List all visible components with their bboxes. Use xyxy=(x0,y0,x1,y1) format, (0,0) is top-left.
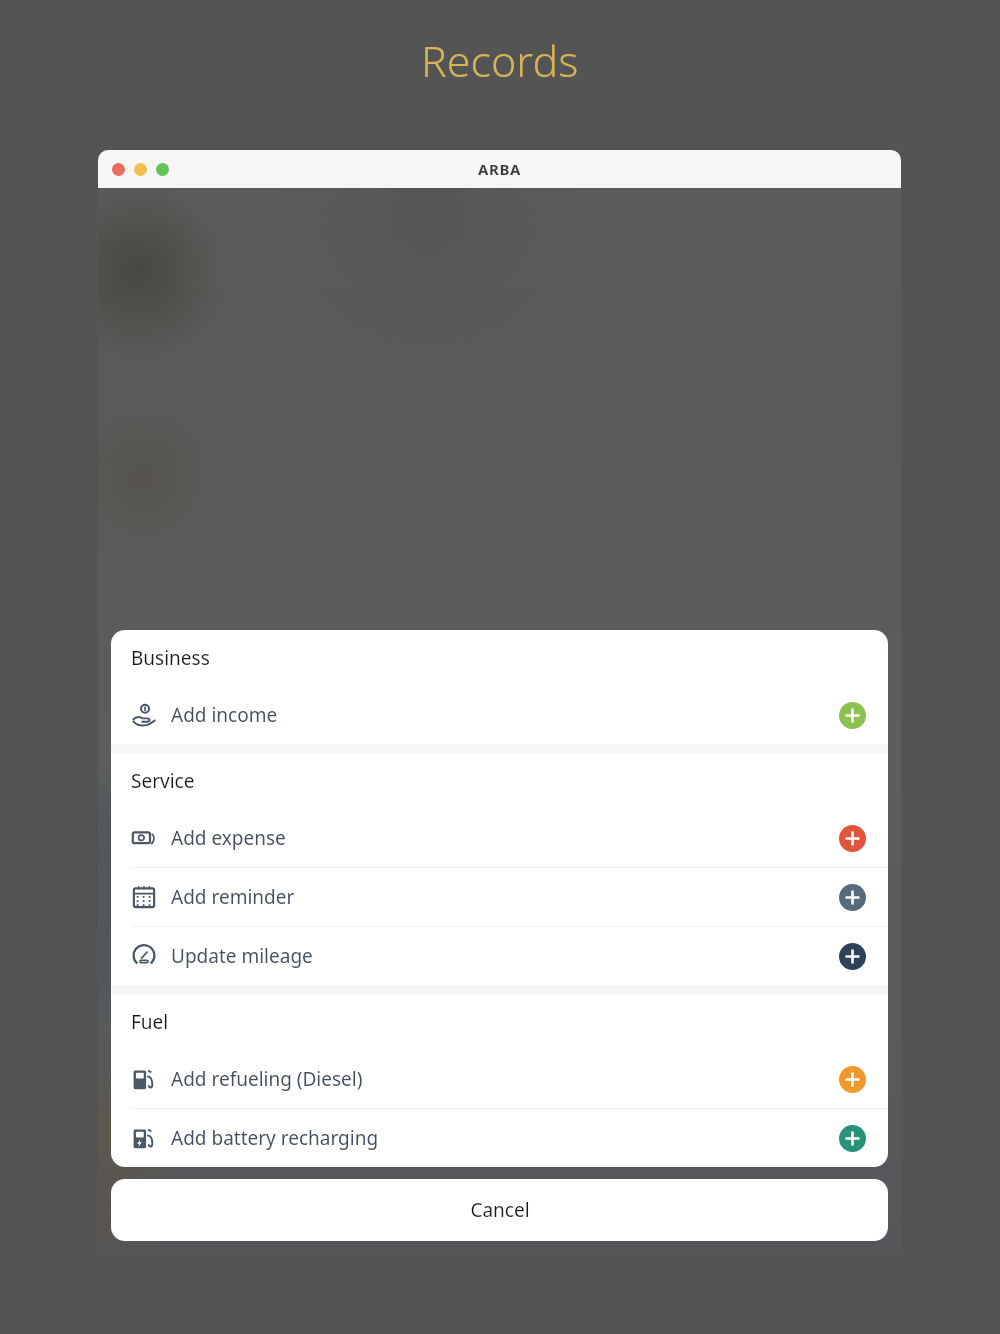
staticText: Cancel xyxy=(470,1197,530,1223)
staticText: ARBA xyxy=(478,159,521,179)
button[interactable]: Close xyxy=(112,163,125,176)
other: Add income xyxy=(839,702,866,729)
button[interactable]: Add income xyxy=(111,686,888,744)
staticText: Business xyxy=(131,645,210,671)
other: Add reminder xyxy=(839,884,866,911)
staticText: Records xyxy=(421,31,579,90)
staticText: Update mileage xyxy=(171,943,313,969)
other: Update mileage xyxy=(839,943,866,970)
button[interactable]: Update mileage xyxy=(111,927,888,985)
staticText: Add reminder xyxy=(171,884,295,910)
staticText: Service xyxy=(131,768,195,794)
button[interactable]: Minimize xyxy=(134,163,147,176)
button[interactable]: Add reminder xyxy=(111,868,888,926)
staticText: Add battery recharging xyxy=(171,1125,379,1151)
button[interactable]: Add refueling (Diesel) xyxy=(111,1050,888,1108)
button[interactable]: Cancel xyxy=(111,1179,888,1241)
other: Add refueling (Diesel) xyxy=(839,1066,866,1093)
button[interactable]: Add battery recharging xyxy=(111,1109,888,1167)
staticText: Fuel xyxy=(131,1009,169,1035)
other: Add expense xyxy=(839,825,866,852)
button[interactable]: Add expense xyxy=(111,809,888,867)
other: Add battery recharging xyxy=(839,1125,866,1152)
staticText: Add refueling (Diesel) xyxy=(171,1066,363,1092)
staticText: Add income xyxy=(171,702,278,728)
button[interactable]: Maximize xyxy=(156,163,169,176)
staticText: Add expense xyxy=(171,825,286,851)
